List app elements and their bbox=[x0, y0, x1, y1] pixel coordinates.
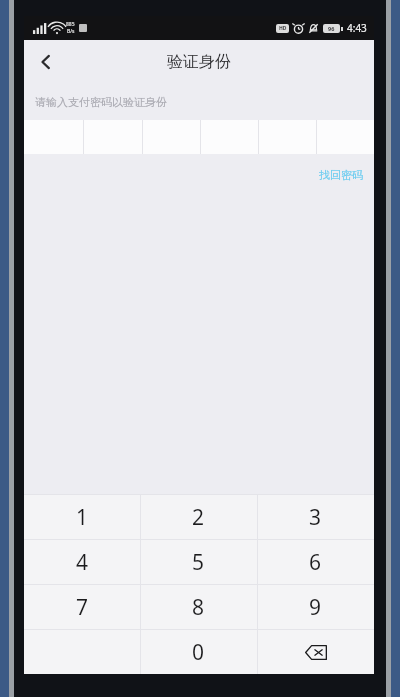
staticText: 找回密码 bbox=[319, 168, 363, 182]
staticText: 2 bbox=[192, 503, 205, 532]
button[interactable]: 9 bbox=[257, 585, 374, 629]
staticText: 9 bbox=[309, 593, 322, 622]
staticText: 请输入支付密码以验证身份 bbox=[35, 95, 167, 109]
staticText: 8 bbox=[192, 593, 205, 622]
button[interactable]: 8 bbox=[140, 585, 257, 629]
button[interactable]: Delete bbox=[257, 630, 374, 674]
staticText: 0 bbox=[192, 638, 205, 667]
staticText: 96 bbox=[328, 25, 335, 32]
staticText: 4 bbox=[76, 548, 89, 577]
staticText: 885 bbox=[66, 21, 75, 28]
staticText: 5 bbox=[192, 548, 205, 577]
staticText: 7 bbox=[76, 593, 89, 622]
staticText: 1 bbox=[76, 503, 89, 532]
button[interactable]: 1 bbox=[24, 495, 140, 539]
button[interactable]: 5 bbox=[140, 540, 257, 584]
button[interactable]: 0 bbox=[140, 630, 257, 674]
button[interactable]: Back bbox=[24, 40, 68, 84]
button[interactable]: 找回密码 bbox=[316, 165, 366, 185]
button[interactable]: 2 bbox=[140, 495, 257, 539]
staticText: 验证身份 bbox=[167, 52, 231, 72]
button[interactable]: 3 bbox=[257, 495, 374, 539]
staticText: 3 bbox=[309, 503, 322, 532]
button[interactable]: 6 bbox=[257, 540, 374, 584]
staticText: HD bbox=[279, 25, 287, 32]
staticText: B/s bbox=[67, 28, 75, 35]
staticText: 4:43 bbox=[347, 21, 367, 35]
button[interactable]: 7 bbox=[24, 585, 140, 629]
staticText: 6 bbox=[309, 548, 322, 577]
button[interactable]: 4 bbox=[24, 540, 140, 584]
